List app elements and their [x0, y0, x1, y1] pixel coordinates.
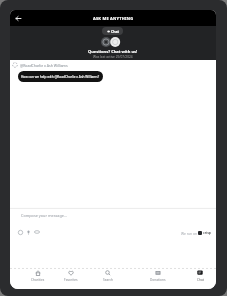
staticText: Search — [103, 278, 114, 282]
button[interactable] — [13, 13, 23, 23]
button[interactable]: Donations — [143, 270, 173, 287]
button[interactable]: Chat — [185, 270, 215, 287]
staticText: crisp — [202, 230, 212, 235]
staticText: Chat — [197, 278, 204, 282]
staticText: Was last active 25/07/2024 — [93, 55, 133, 59]
button[interactable]: Chat — [102, 27, 123, 35]
button[interactable]: Search — [93, 270, 123, 287]
button[interactable]: Charities — [23, 270, 53, 287]
staticText: How can we help with @RoadCharlie x Ash … — [21, 75, 100, 79]
button[interactable]: Compose your message... — [21, 213, 67, 218]
staticText: Charities — [31, 278, 45, 282]
staticText: Donations — [150, 278, 166, 282]
staticText: @RoadCharlie x Ash Williams — [20, 63, 68, 68]
button[interactable] — [17, 229, 23, 235]
staticText: ASK ME ANYTHING — [93, 16, 134, 21]
button[interactable] — [33, 229, 40, 235]
staticText: Chat — [111, 29, 119, 34]
button[interactable]: How can we help with @RoadCharlie x Ash … — [18, 71, 103, 82]
staticText: Favorites — [64, 278, 78, 282]
staticText: We run on — [181, 231, 198, 235]
staticText: Questions? Chat with us! — [88, 49, 138, 54]
button[interactable] — [25, 229, 31, 235]
button[interactable]: Favorites — [56, 270, 86, 287]
